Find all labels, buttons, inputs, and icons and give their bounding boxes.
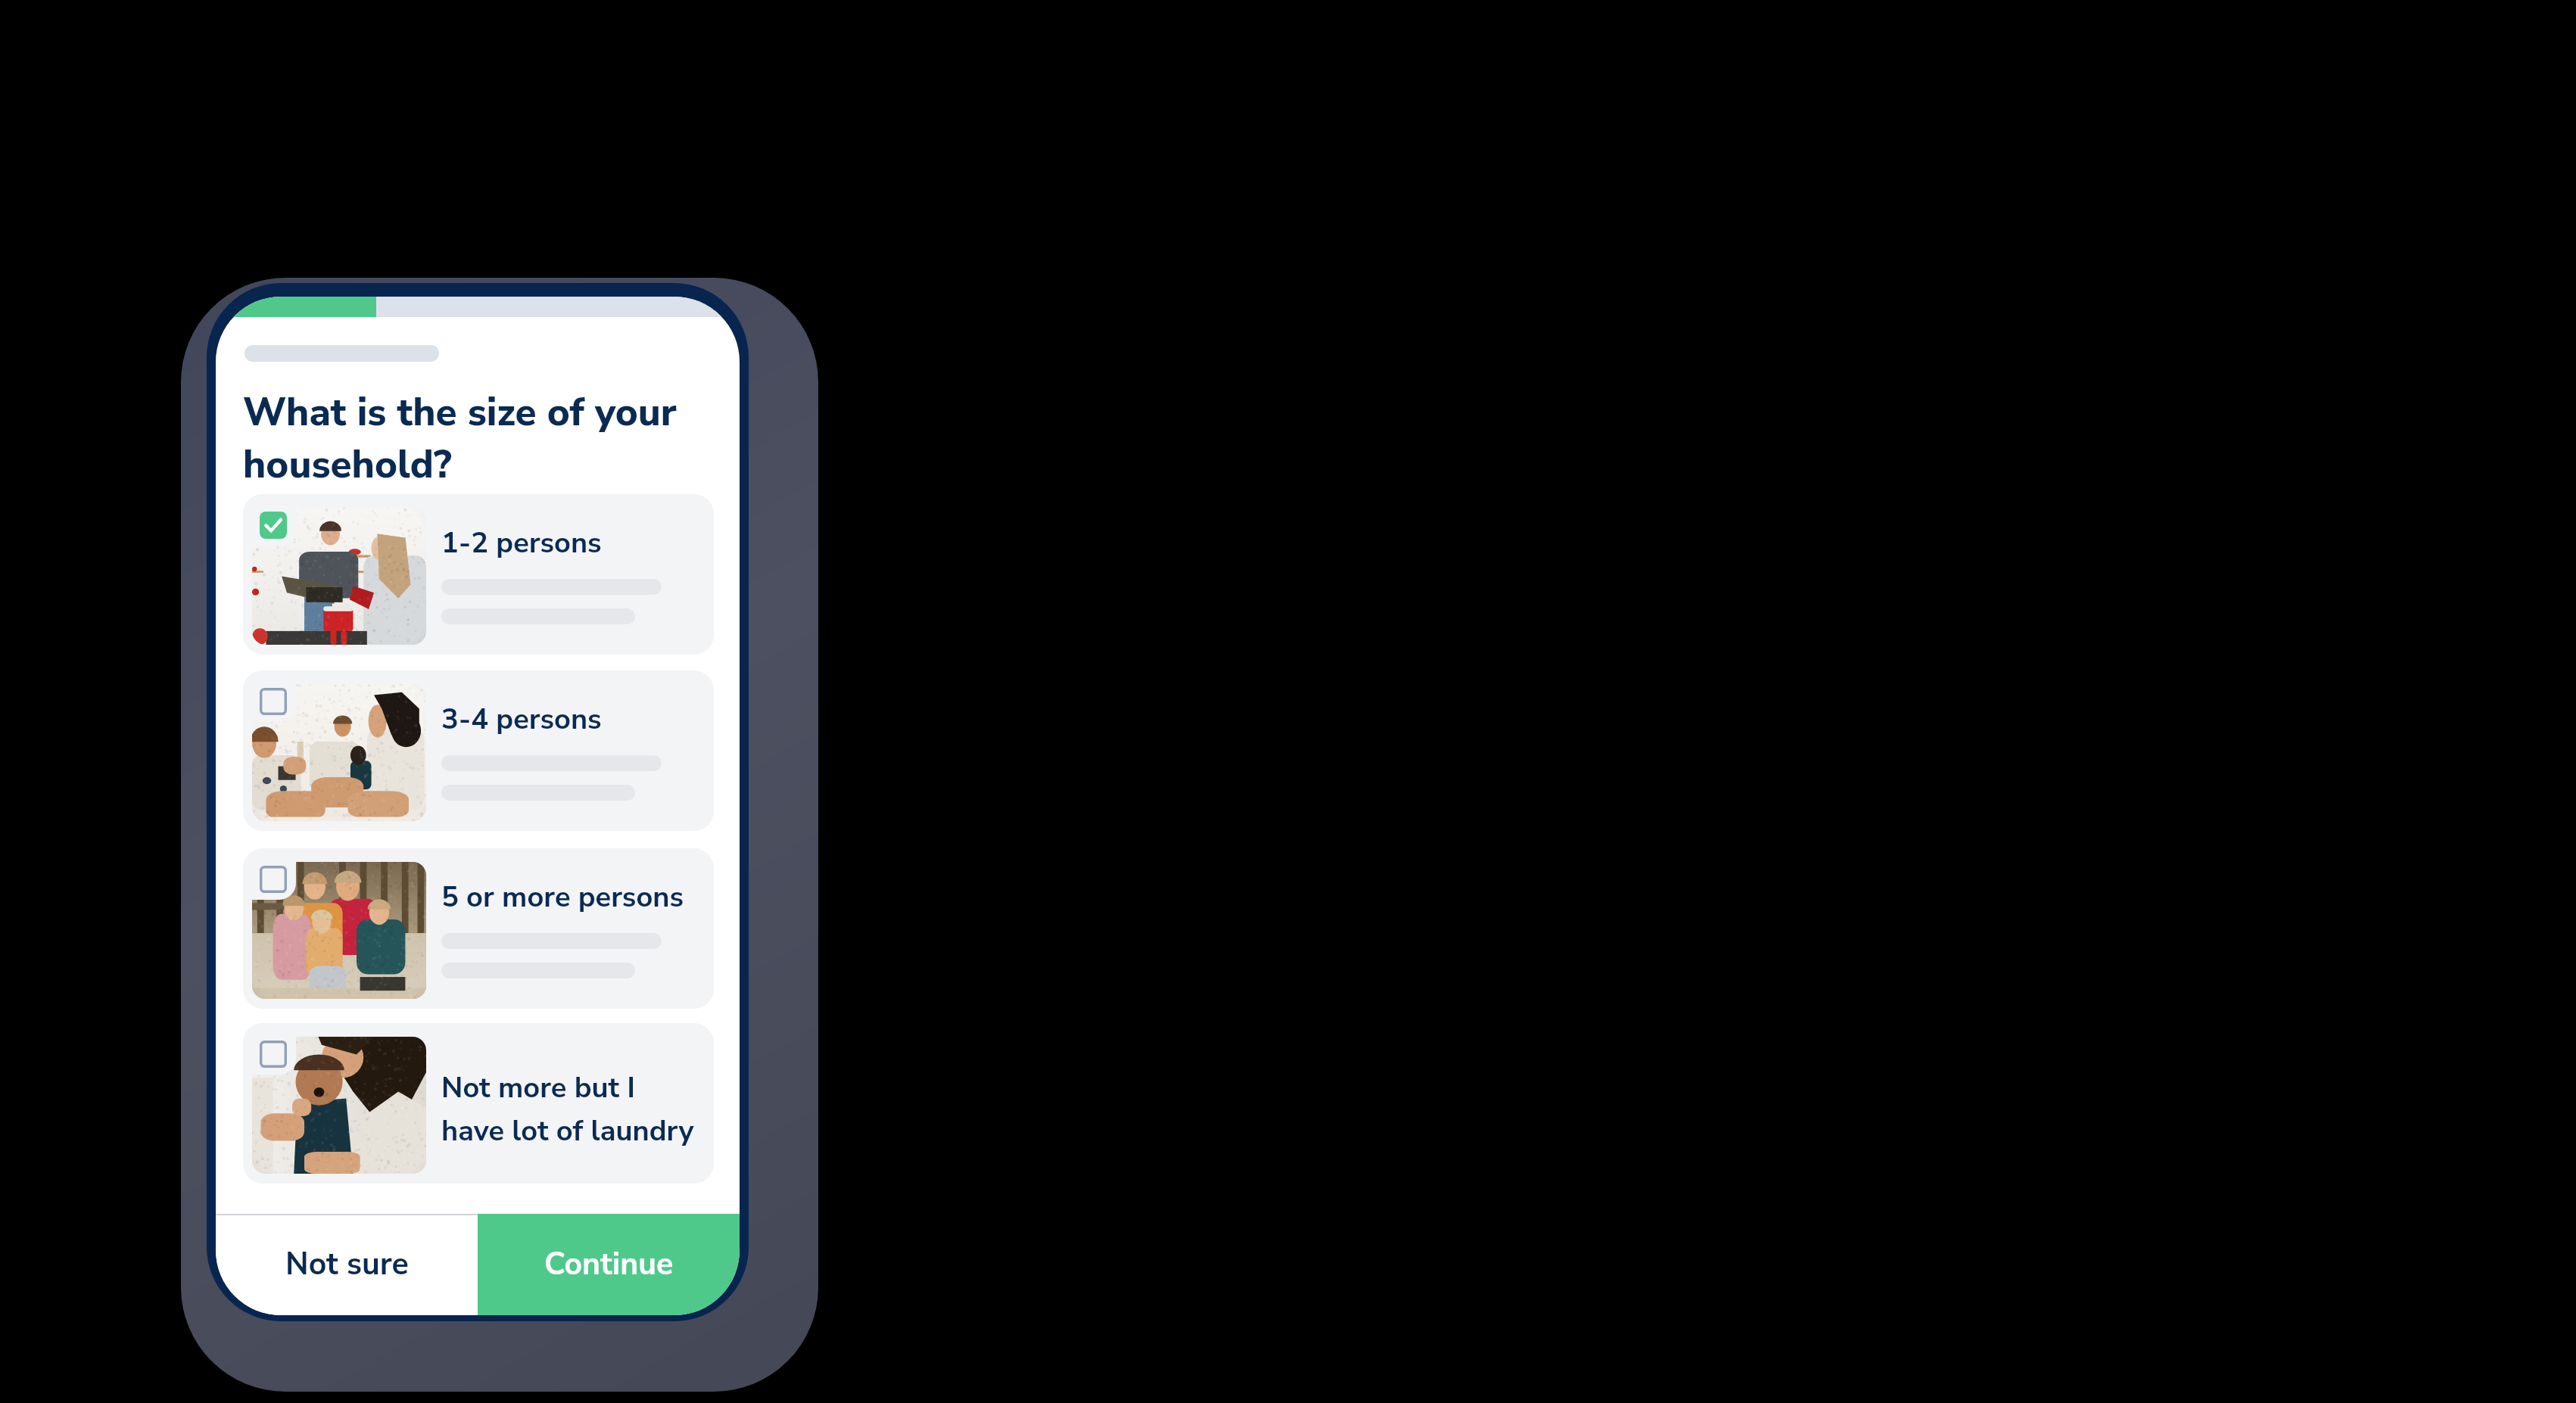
staticText: 1-2 persons xyxy=(441,523,602,562)
staticText: Not sure xyxy=(285,1243,409,1286)
staticText: What is the size of your household? xyxy=(243,387,706,491)
button[interactable]: Selected: 1-2 persons xyxy=(260,512,287,539)
button[interactable]: Select Not more but I have lot of laundr… xyxy=(243,1023,714,1184)
staticText: 5 or more persons xyxy=(441,877,684,916)
button[interactable]: Selected: 1-2 persons xyxy=(243,494,714,655)
staticText: 3-4 persons xyxy=(441,699,602,739)
button[interactable]: Not sure xyxy=(216,1214,478,1315)
button[interactable]: Select 3-4 persons xyxy=(260,688,287,715)
button[interactable]: Continue xyxy=(478,1214,740,1315)
staticText: Continue xyxy=(544,1243,674,1286)
button[interactable]: Select 5 or more persons xyxy=(260,866,287,893)
button[interactable]: Select 3-4 persons xyxy=(243,670,714,831)
button[interactable]: Select 5 or more persons xyxy=(243,848,714,1009)
button[interactable]: Select Not more but I have lot of laundr… xyxy=(260,1041,287,1068)
staticText: Not more but I have lot of laundry xyxy=(441,1065,714,1152)
